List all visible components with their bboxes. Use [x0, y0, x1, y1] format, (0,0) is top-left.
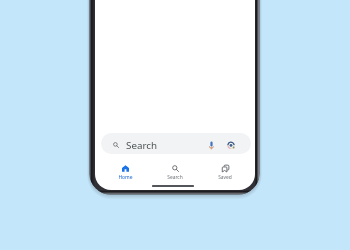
button[interactable]: Search with Google Lens — [225, 139, 237, 151]
staticText: Saved — [218, 174, 232, 181]
staticText: Home — [118, 174, 133, 181]
button[interactable]: Search — [150, 162, 200, 182]
staticText: Search — [126, 139, 158, 152]
button[interactable]: Home — [100, 162, 150, 182]
button[interactable]: Saved — [200, 162, 250, 182]
button[interactable]: Search by voice — [205, 139, 217, 151]
button[interactable]: Search — [101, 133, 251, 154]
staticText: Search — [167, 174, 183, 181]
